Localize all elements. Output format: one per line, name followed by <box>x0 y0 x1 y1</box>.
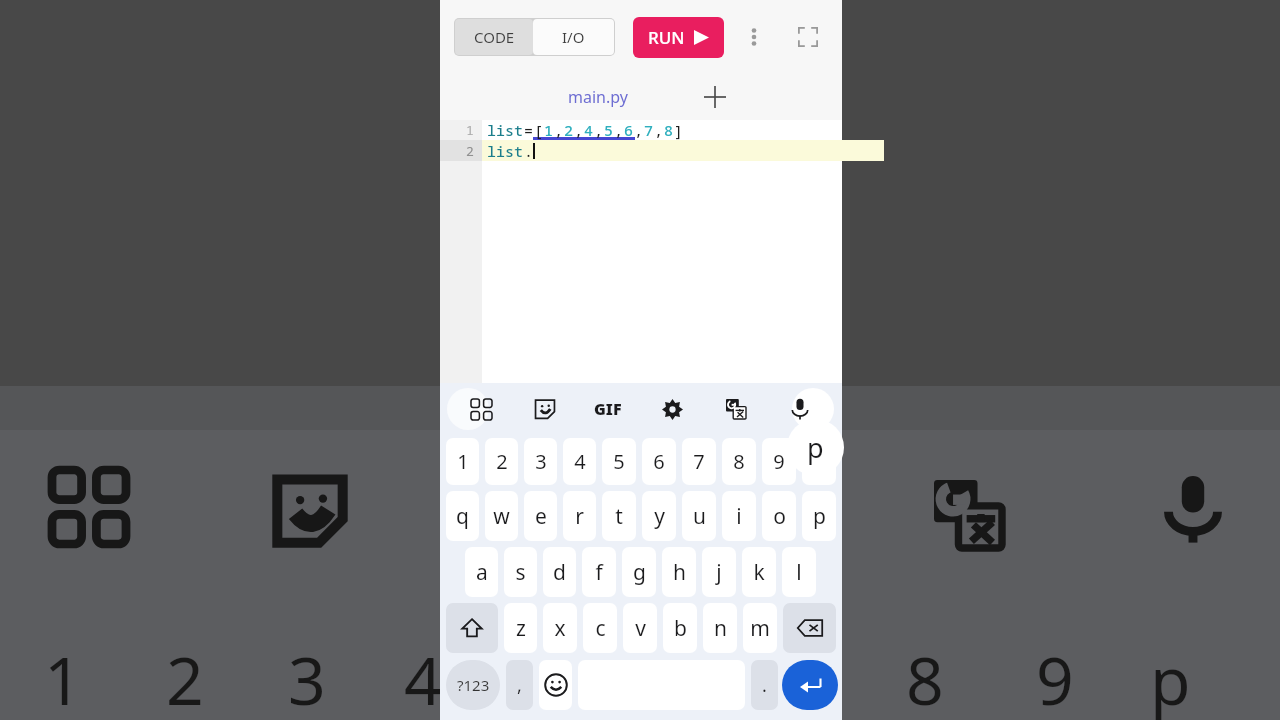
button[interactable]: Settings <box>640 383 704 435</box>
staticText: list <box>487 120 524 140</box>
button[interactable]: 4 <box>563 438 596 485</box>
button[interactable]: w <box>485 491 518 541</box>
staticText: 5 <box>613 448 625 475</box>
button[interactable]: Enter <box>782 660 838 710</box>
staticText: 6 <box>624 120 634 140</box>
button[interactable]: p <box>802 491 836 541</box>
staticText: j <box>716 558 722 587</box>
button[interactable]: Shift <box>446 603 498 653</box>
button[interactable]: v <box>623 603 657 653</box>
button[interactable]: n <box>703 603 737 653</box>
button[interactable]: GIF <box>576 383 640 435</box>
staticText: 1 <box>544 120 554 140</box>
staticText: v <box>635 614 646 643</box>
button[interactable]: 3 <box>524 438 557 485</box>
button[interactable]: c <box>583 603 617 653</box>
button[interactable]: d <box>543 547 576 597</box>
button[interactable]: a <box>465 547 498 597</box>
button[interactable]: CODE <box>455 19 533 55</box>
staticText: 5 <box>604 120 614 140</box>
staticText: x <box>554 614 566 643</box>
staticText: 4 <box>404 634 442 720</box>
staticText: , <box>634 120 644 140</box>
button[interactable]: j <box>702 547 736 597</box>
staticText: 0 <box>813 448 825 475</box>
button[interactable]: r <box>563 491 596 541</box>
staticText: w <box>493 502 510 531</box>
button[interactable]: g <box>622 547 656 597</box>
button[interactable]: q <box>446 491 479 541</box>
staticText: e <box>535 502 547 531</box>
staticText: k <box>753 558 765 587</box>
staticText: 2 <box>466 142 474 160</box>
staticText: 2 <box>564 120 574 140</box>
staticText: 1 <box>44 634 82 720</box>
staticText: s <box>515 558 526 587</box>
button[interactable]: z <box>504 603 537 653</box>
staticText: , <box>654 120 664 140</box>
button[interactable]: 1 <box>446 438 479 485</box>
staticText: p <box>1150 634 1191 720</box>
button[interactable]: b <box>663 603 697 653</box>
button[interactable]: 9 <box>762 438 796 485</box>
button[interactable]: t <box>602 491 636 541</box>
button[interactable]: y <box>642 491 676 541</box>
button[interactable]: i <box>722 491 756 541</box>
button[interactable]: k <box>742 547 776 597</box>
button[interactable]: Emoji <box>539 660 572 710</box>
staticText: list <box>487 141 524 161</box>
button[interactable]: s <box>504 547 537 597</box>
button[interactable]: Fullscreen <box>786 15 830 59</box>
button[interactable]: 8 <box>722 438 756 485</box>
button[interactable]: . <box>751 660 778 710</box>
button[interactable]: Stickers <box>513 383 576 435</box>
staticText: . <box>524 141 534 161</box>
button[interactable]: More options <box>732 15 776 59</box>
staticText: 1 <box>466 121 474 139</box>
button[interactable]: Backspace <box>783 603 836 653</box>
button[interactable]: o <box>762 491 796 541</box>
staticText: I/O <box>562 27 585 47</box>
button[interactable]: Translate <box>704 383 768 435</box>
button[interactable]: h <box>662 547 696 597</box>
button[interactable]: m <box>743 603 777 653</box>
staticText: 9 <box>773 448 785 475</box>
button[interactable]: 2 <box>485 438 518 485</box>
button[interactable]: I/O <box>533 19 614 55</box>
staticText: = <box>524 120 534 140</box>
staticText: f <box>595 558 603 587</box>
staticText: 8 <box>664 120 674 140</box>
button[interactable]: f <box>582 547 616 597</box>
button[interactable]: New file <box>690 74 740 120</box>
button[interactable]: 5 <box>602 438 636 485</box>
staticText: r <box>575 502 584 531</box>
staticText: , <box>594 120 604 140</box>
button[interactable]: x <box>543 603 577 653</box>
staticText: main.py <box>568 86 628 108</box>
staticText: y <box>654 502 665 531</box>
button[interactable]: , <box>506 660 533 710</box>
staticText: 9 <box>1036 634 1074 720</box>
button[interactable]: RUN <box>633 17 724 58</box>
button[interactable]: l <box>782 547 816 597</box>
button[interactable]: Voice input <box>768 383 832 435</box>
staticText: 6 <box>653 448 665 475</box>
staticText: 1 <box>457 448 469 475</box>
staticText: d <box>553 558 566 587</box>
button[interactable]: e <box>524 491 557 541</box>
staticText: 8 <box>733 448 745 475</box>
button[interactable]: Apps <box>450 383 513 435</box>
button[interactable]: u <box>682 491 716 541</box>
staticText: t <box>615 502 623 531</box>
button[interactable]: 0 <box>802 438 836 485</box>
button[interactable]: 7 <box>682 438 716 485</box>
staticText: i <box>736 502 742 531</box>
button[interactable]: 6 <box>642 438 676 485</box>
staticText: CODE <box>474 27 515 47</box>
staticText: n <box>714 614 727 643</box>
button[interactable]: ?123 <box>446 660 500 710</box>
button[interactable]: main.py <box>538 74 658 120</box>
staticText: 4 <box>584 120 594 140</box>
staticText: a <box>476 558 488 587</box>
